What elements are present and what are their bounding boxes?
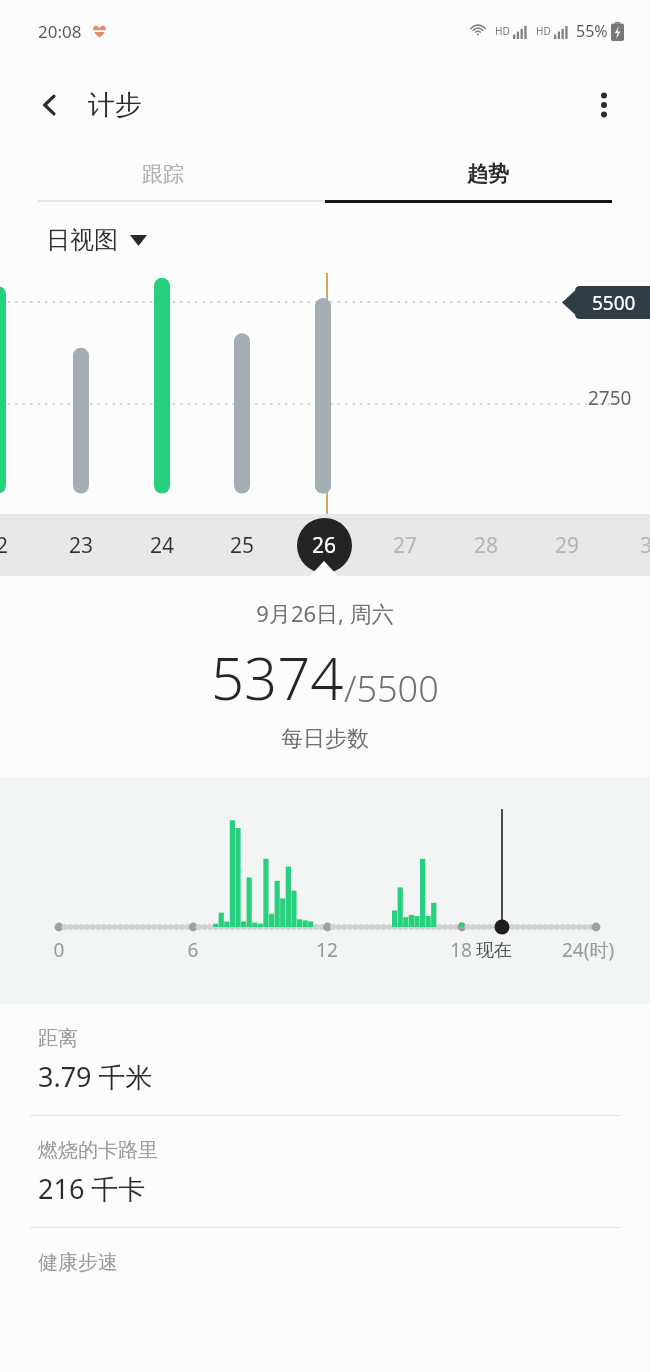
button[interactable]: 燃烧的卡路里	[0, 1116, 650, 1227]
staticText: 3	[640, 531, 650, 560]
staticText: 20:08	[38, 20, 82, 43]
staticText: HD	[495, 24, 510, 38]
staticText: 距离	[38, 1026, 78, 1051]
staticText: 6	[179, 937, 207, 963]
button[interactable]: 跟踪	[0, 148, 325, 200]
staticText: 23	[69, 531, 94, 560]
staticText: 健康步速	[38, 1250, 118, 1275]
staticText: 3.79 千米	[38, 1058, 153, 1095]
staticText: 趋势	[467, 161, 509, 187]
button[interactable]: 3	[615, 514, 650, 576]
button[interactable]: 日视图	[46, 225, 147, 255]
staticText: 现在	[476, 939, 512, 962]
button[interactable]: 26	[293, 514, 355, 576]
staticText: 5500	[592, 290, 636, 316]
staticText: 25	[230, 531, 255, 560]
staticText: 5374	[211, 638, 344, 717]
staticText: 216 千卡	[38, 1170, 146, 1207]
button[interactable]: 25	[211, 514, 273, 576]
button[interactable]: 健康步速	[0, 1228, 650, 1295]
button[interactable]: 2	[0, 514, 33, 576]
staticText: HD	[536, 24, 551, 38]
staticText: /5500	[344, 664, 439, 713]
button[interactable]: More options	[580, 81, 628, 129]
staticText: 9月26日, 周六	[256, 598, 394, 628]
button[interactable]: 24	[131, 514, 193, 576]
staticText: 26	[312, 531, 337, 560]
button[interactable]: 23	[50, 514, 112, 576]
staticText: 日视图	[46, 225, 118, 255]
staticText: 燃烧的卡路里	[38, 1138, 158, 1163]
staticText: 2	[0, 531, 9, 560]
staticText: 跟踪	[142, 161, 184, 187]
staticText: 24	[150, 531, 175, 560]
staticText: 55%	[576, 20, 608, 42]
staticText: 28	[474, 531, 499, 560]
button[interactable]: 趋势	[325, 148, 650, 200]
button[interactable]: 28	[455, 514, 517, 576]
staticText: 27	[393, 531, 418, 560]
button[interactable]: 29	[536, 514, 598, 576]
staticText: 每日步数	[281, 725, 369, 753]
staticText: 12	[313, 937, 341, 963]
button[interactable]: 距离	[0, 1004, 650, 1115]
button[interactable]: Back	[26, 81, 74, 129]
staticText: 计步	[88, 88, 142, 122]
button[interactable]: 27	[374, 514, 436, 576]
staticText: 18	[447, 937, 475, 963]
staticText: 24(时)	[562, 937, 615, 963]
staticText: 2750	[588, 385, 632, 411]
staticText: 29	[555, 531, 580, 560]
staticText: 0	[45, 937, 73, 963]
